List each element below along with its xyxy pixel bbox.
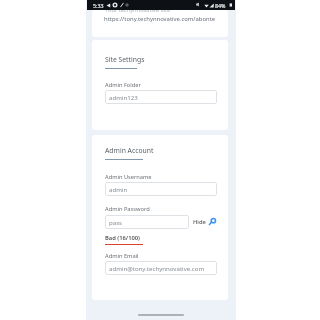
staticText: admin (109, 185, 128, 193)
staticText: Admin Account (105, 146, 154, 155)
staticText: Your techynnovative site (105, 6, 171, 14)
staticText: 5:33 (93, 2, 104, 9)
staticText: Hide (193, 218, 206, 226)
staticText: Bad (16/100) (105, 234, 140, 242)
staticText: Site Settings (105, 55, 145, 64)
button[interactable]: admin@tony.techynnovative.com (105, 261, 217, 275)
staticText: admin@tony.techynnovative.com (109, 264, 205, 272)
button[interactable]: admin123 (105, 90, 217, 104)
staticText: Admin Password (105, 205, 150, 213)
button[interactable]: admin (105, 182, 217, 196)
button[interactable]: Hide (193, 218, 216, 226)
staticText: pass (109, 218, 123, 226)
staticText: admin123 (109, 93, 138, 101)
staticText: Admin Email (105, 252, 139, 260)
staticText: Admin Username (105, 173, 152, 181)
button[interactable]: pass (105, 215, 189, 229)
other: Show password (208, 218, 216, 226)
staticText: 84% (215, 2, 226, 9)
staticText: Admin Folder (105, 81, 141, 89)
staticText: https://tony.techynnovative.com/abonte (104, 15, 216, 23)
